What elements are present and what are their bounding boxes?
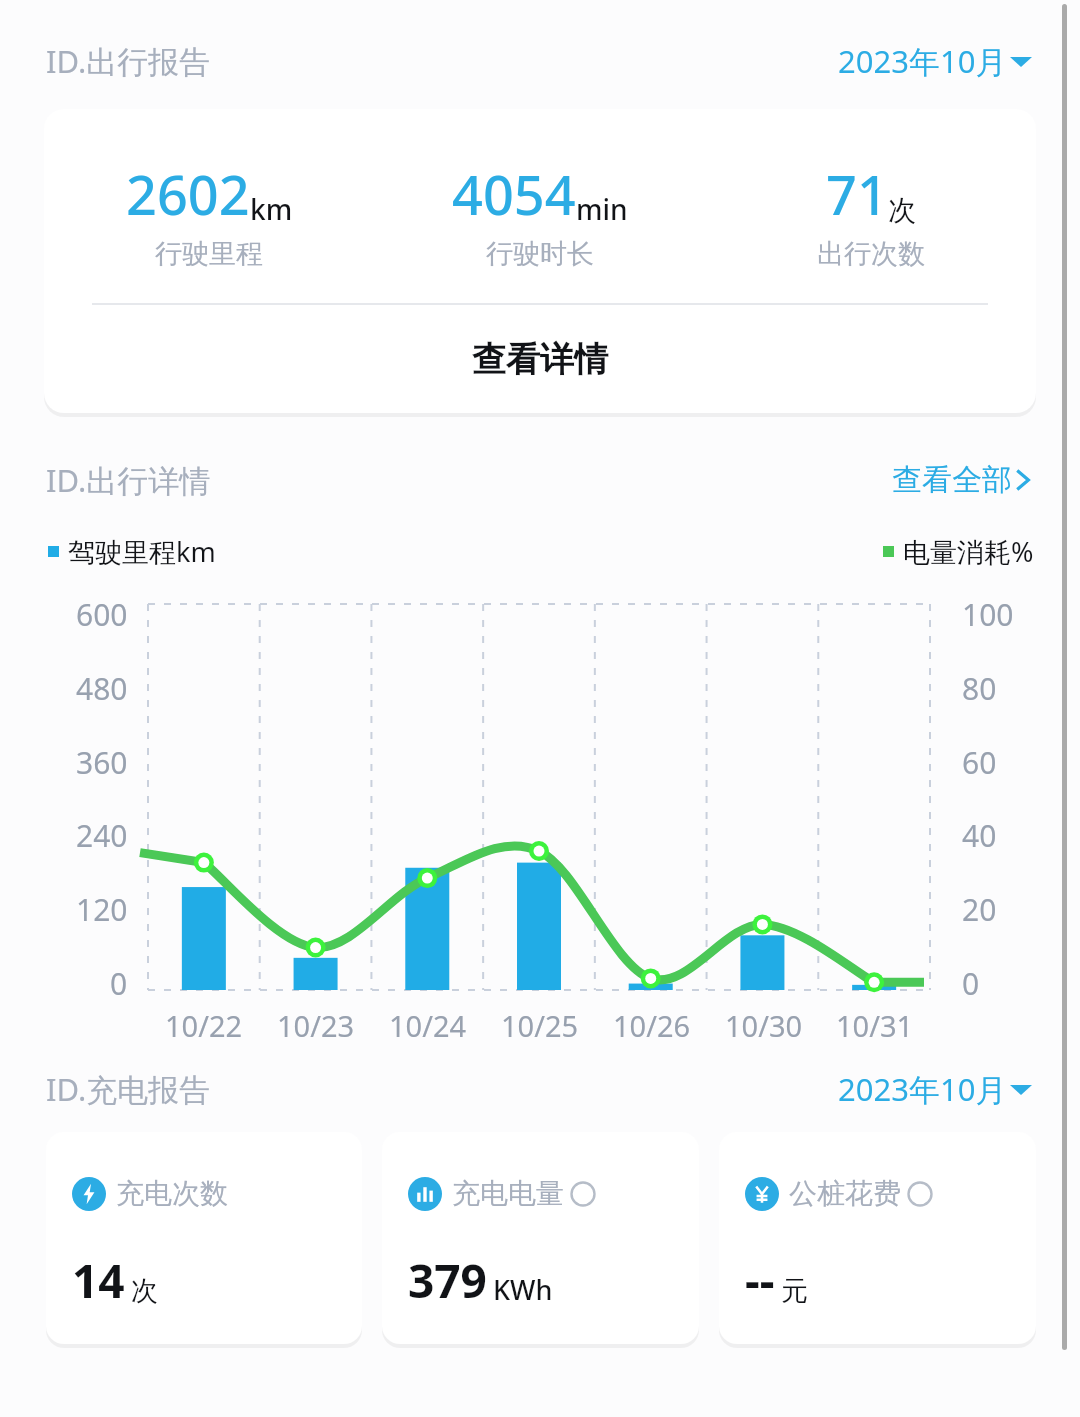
staticText: 次 xyxy=(888,193,916,228)
staticText: 71 xyxy=(826,157,888,231)
staticText: 0 xyxy=(110,963,128,1004)
staticText: 公桩花费 xyxy=(789,1176,901,1211)
staticText: 80 xyxy=(962,668,997,709)
staticText: 2023年10月 xyxy=(838,1068,1007,1110)
button[interactable]: Energy charged xyxy=(382,1132,699,1344)
staticText: 40 xyxy=(962,815,997,856)
button[interactable]: 2023年10月 xyxy=(834,1064,1036,1114)
staticText: 10/30 xyxy=(725,1006,803,1045)
staticText: ID.出行报告 xyxy=(46,40,211,82)
staticText: 360 xyxy=(76,742,128,783)
button[interactable]: 查看全部 xyxy=(888,457,1036,503)
staticText: 100 xyxy=(962,594,1014,635)
staticText: 出行次数 xyxy=(817,237,925,271)
staticText: 10/25 xyxy=(501,1006,579,1045)
staticText: 480 xyxy=(76,668,128,709)
staticText: 驾驶里程km xyxy=(68,533,216,570)
staticText: KWh xyxy=(493,1271,553,1308)
staticText: 充电次数 xyxy=(116,1176,228,1211)
staticText: 240 xyxy=(76,815,128,856)
staticText: 10/24 xyxy=(389,1006,467,1045)
staticText: 元 xyxy=(781,1274,808,1308)
other: Public charging cost xyxy=(745,1177,779,1211)
staticText: 10/23 xyxy=(277,1006,355,1045)
staticText: ID.出行详情 xyxy=(46,459,211,501)
staticText: 查看详情 xyxy=(472,338,608,381)
other: Energy charged xyxy=(408,1177,442,1211)
staticText: 20 xyxy=(962,889,997,930)
staticText: 10/22 xyxy=(165,1006,243,1045)
button[interactable]: 2023年10月 xyxy=(834,36,1036,86)
staticText: ID.充电报告 xyxy=(46,1068,211,1110)
staticText: 60 xyxy=(962,742,997,783)
staticText: 10/31 xyxy=(836,1006,914,1045)
staticText: 次 xyxy=(131,1274,158,1308)
staticText: 查看全部 xyxy=(892,461,1012,499)
staticText: 600 xyxy=(76,594,128,635)
staticText: 10/26 xyxy=(613,1006,691,1045)
staticText: 14 xyxy=(72,1249,125,1312)
staticText: 充电电量 xyxy=(452,1176,564,1211)
other: Charging count xyxy=(72,1177,106,1211)
staticText: 379 xyxy=(408,1249,487,1312)
staticText: 120 xyxy=(76,889,128,930)
staticText: 0 xyxy=(962,963,980,1004)
button[interactable]: 2602 xyxy=(44,109,1036,413)
staticText: 电量消耗% xyxy=(903,533,1034,570)
staticText: -- xyxy=(745,1249,775,1312)
staticText: 4054 xyxy=(452,157,576,231)
staticText: min xyxy=(576,190,628,228)
staticText: 2023年10月 xyxy=(838,40,1007,82)
button[interactable]: Public charging cost xyxy=(719,1132,1036,1344)
staticText: 行驶里程 xyxy=(155,237,263,271)
staticText: 2602 xyxy=(126,157,250,231)
staticText: km xyxy=(250,190,293,228)
button[interactable]: Charging count xyxy=(46,1132,362,1344)
staticText: 行驶时长 xyxy=(486,237,594,271)
